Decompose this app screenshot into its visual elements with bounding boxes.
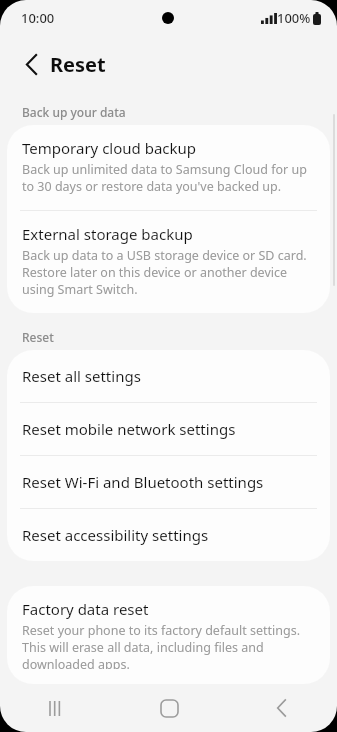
staticText: Back up your data — [22, 104, 126, 120]
staticText: Reset — [22, 329, 54, 345]
staticText: Reset — [50, 51, 106, 78]
button[interactable]: Reset Wi-Fi and Bluetooth settings — [7, 456, 330, 508]
staticText: Back up data to a USB storage device or … — [22, 247, 313, 298]
staticText: Reset accessibility settings — [22, 525, 209, 545]
staticText: Factory data reset — [22, 599, 149, 619]
button[interactable]: Navigate up — [12, 45, 50, 83]
staticText: Reset your phone to its factory default … — [22, 622, 313, 669]
button[interactable]: Factory data reset — [7, 586, 330, 684]
staticText: Back up unlimited data to Samsung Cloud … — [22, 161, 313, 195]
button[interactable]: Temporary cloud backup — [7, 125, 330, 210]
button[interactable]: External storage backup — [7, 211, 330, 313]
staticText: Reset mobile network settings — [22, 419, 236, 439]
button[interactable]: Reset all settings — [7, 350, 330, 402]
button[interactable]: Recent apps — [0, 684, 113, 732]
staticText: 100% — [277, 9, 311, 27]
staticText: External storage backup — [22, 224, 193, 244]
staticText: Reset all settings — [22, 366, 141, 386]
staticText: 10:00 — [21, 9, 55, 27]
button[interactable]: Back — [225, 684, 337, 732]
staticText: Reset Wi-Fi and Bluetooth settings — [22, 472, 264, 492]
button[interactable]: Reset accessibility settings — [7, 509, 330, 561]
button[interactable]: Home — [113, 684, 225, 732]
staticText: Temporary cloud backup — [22, 138, 197, 158]
button[interactable]: Reset mobile network settings — [7, 403, 330, 455]
